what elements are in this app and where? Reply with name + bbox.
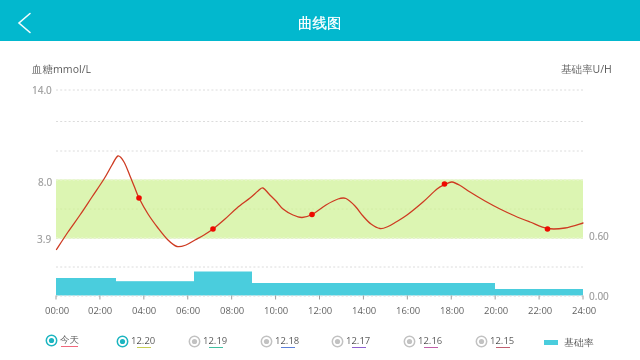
- button[interactable]: 基础率: [544, 336, 594, 349]
- staticText: 20:00: [484, 304, 509, 317]
- staticText: 12.20: [131, 334, 156, 347]
- staticText: 12:00: [308, 304, 333, 317]
- button[interactable]: 12.18: [260, 334, 300, 348]
- staticText: 基础率: [564, 336, 594, 349]
- button[interactable]: 12.20: [116, 334, 156, 348]
- staticText: 基础率U/H: [561, 62, 612, 76]
- button[interactable]: 12.15: [475, 334, 515, 348]
- button[interactable]: 12.19: [188, 334, 228, 348]
- staticText: 12.15: [490, 334, 515, 347]
- staticText: 12.19: [203, 334, 228, 347]
- staticText: 14:00: [352, 304, 377, 317]
- staticText: 08:00: [220, 304, 245, 317]
- staticText: 今天: [60, 334, 79, 346]
- staticText: 14.0: [32, 83, 52, 97]
- button[interactable]: 今天: [45, 334, 79, 347]
- staticText: 04:00: [132, 304, 157, 317]
- button[interactable]: 12.16: [403, 334, 443, 348]
- staticText: 8.0: [38, 175, 53, 189]
- staticText: 曲线图: [298, 14, 342, 32]
- staticText: 10:00: [264, 304, 289, 317]
- staticText: 02:00: [88, 304, 113, 317]
- staticText: 3.9: [37, 232, 52, 246]
- staticText: 12.16: [418, 334, 443, 347]
- staticText: 00:00: [45, 304, 70, 317]
- staticText: 16:00: [396, 304, 421, 317]
- button[interactable]: 12.17: [331, 334, 371, 348]
- staticText: 0.60: [589, 229, 609, 243]
- staticText: 18:00: [440, 304, 465, 317]
- staticText: 0.00: [589, 289, 609, 303]
- button[interactable]: Back: [8, 5, 40, 37]
- staticText: 06:00: [176, 304, 201, 317]
- staticText: 12.18: [275, 334, 300, 347]
- staticText: 24:00: [572, 304, 597, 317]
- staticText: 22:00: [528, 304, 553, 317]
- staticText: 12.17: [346, 334, 371, 347]
- staticText: 血糖mmol/L: [32, 62, 92, 76]
